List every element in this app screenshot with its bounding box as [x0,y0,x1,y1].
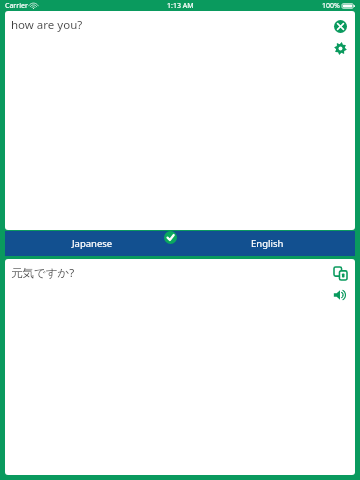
button[interactable]: Swap languages [163,230,177,244]
staticText: English [251,237,284,250]
staticText: 100% [322,1,340,11]
button[interactable]: Copy translation [329,262,351,284]
button[interactable]: Japanese [5,231,180,256]
button[interactable]: Settings [329,37,351,59]
button[interactable]: Speak translation [329,284,351,306]
button[interactable]: Clear text [329,15,351,37]
staticText: Carrier [5,1,28,11]
staticText: how are you? [11,17,83,33]
staticText: 元気ですか? [11,265,75,281]
staticText: Japanese [72,237,113,250]
staticText: 1:13 AM [167,1,194,11]
button[interactable]: English [180,231,355,256]
